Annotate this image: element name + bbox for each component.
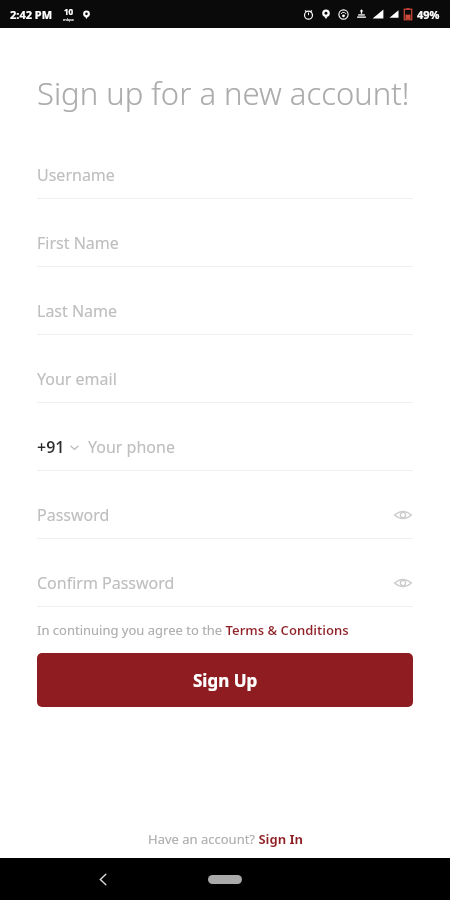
staticText: 10 xyxy=(64,6,74,17)
button[interactable]: Last Name xyxy=(37,288,413,335)
button[interactable]: Sign Up xyxy=(37,653,413,707)
button[interactable]: Home xyxy=(208,875,242,884)
staticText: Your email xyxy=(37,368,117,390)
staticText: Sign up for a new account! xyxy=(37,72,410,114)
staticText: Sign Up xyxy=(193,669,258,692)
staticText: 49% xyxy=(417,7,440,22)
button[interactable]: Select country code xyxy=(69,442,80,453)
staticText: Username xyxy=(37,164,115,186)
button[interactable]: +91 xyxy=(37,424,413,471)
staticText: Have an account? Sign In xyxy=(148,830,303,848)
staticText: Your phone xyxy=(88,436,175,458)
button[interactable]: Username xyxy=(37,152,413,199)
button[interactable]: Have an account? Sign In xyxy=(37,830,413,848)
button[interactable]: Show password xyxy=(393,505,413,525)
button[interactable]: Show password xyxy=(393,573,413,593)
button[interactable]: Your email xyxy=(37,356,413,403)
staticText: 2:42 PM xyxy=(10,7,53,22)
staticText: First Name xyxy=(37,232,119,254)
staticText: Last Name xyxy=(37,300,118,322)
staticText: mbps xyxy=(63,17,74,22)
staticText: Confirm Password xyxy=(37,572,175,594)
button[interactable]: Back xyxy=(86,862,120,896)
button[interactable]: In continuing you agree to the Terms & C… xyxy=(37,621,413,639)
button[interactable]: Confirm Password xyxy=(37,560,413,607)
button[interactable]: First Name xyxy=(37,220,413,267)
button[interactable]: Password xyxy=(37,492,413,539)
staticText: Password xyxy=(37,504,110,526)
staticText: +91 xyxy=(37,436,65,458)
